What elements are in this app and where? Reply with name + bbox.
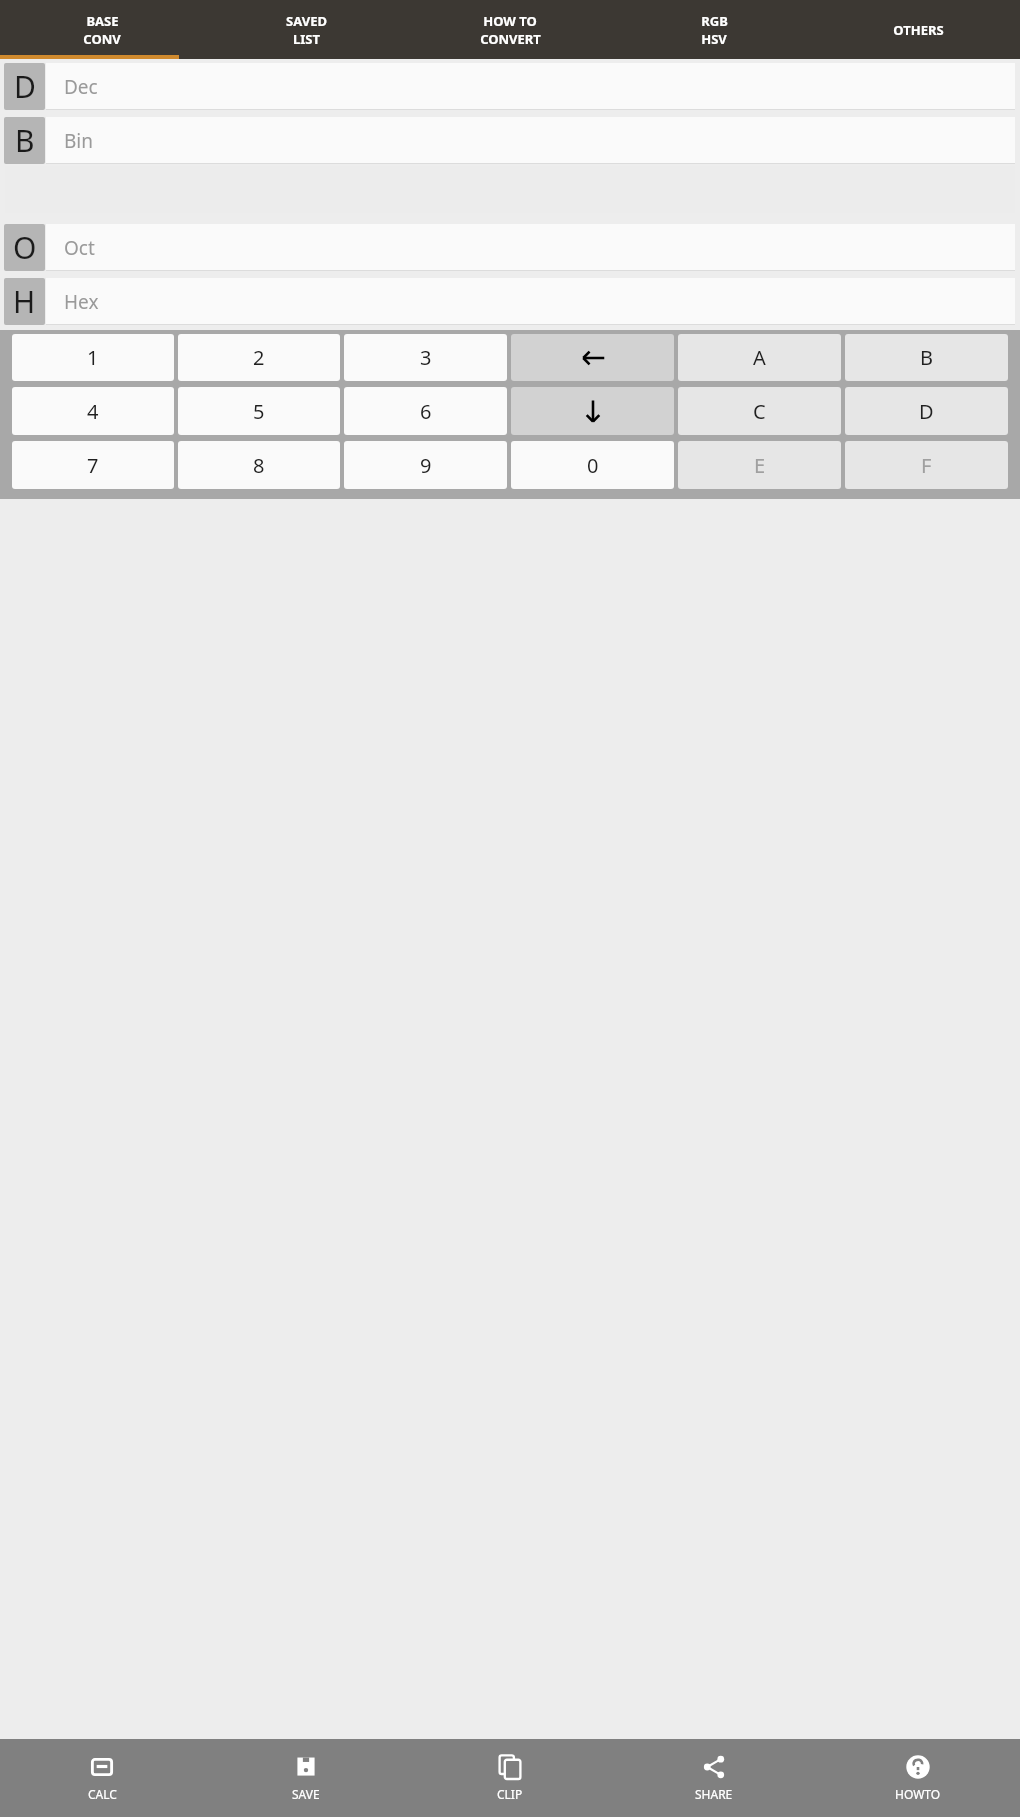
other: Hide keypad: [578, 396, 608, 426]
button[interactable]: SAVED: [204, 0, 408, 59]
button[interactable]: D: [845, 387, 1008, 435]
staticText: SAVED: [286, 12, 327, 30]
button[interactable]: 4: [12, 387, 174, 435]
staticText: HOW TO: [483, 12, 537, 30]
staticText: 4: [87, 398, 99, 425]
staticText: 7: [87, 452, 99, 479]
button[interactable]: 5: [178, 387, 340, 435]
staticText: CALC: [88, 1786, 117, 1802]
staticText: Bin: [64, 128, 93, 154]
button[interactable]: HOWTO: [816, 1739, 1020, 1817]
staticText: 1: [87, 344, 99, 371]
staticText: 2: [253, 344, 265, 371]
staticText: H: [13, 281, 36, 322]
button[interactable]: BASE: [0, 0, 204, 59]
button[interactable]: SHARE: [612, 1739, 816, 1817]
button[interactable]: 3: [344, 334, 507, 381]
staticText: HOWTO: [895, 1786, 941, 1802]
button[interactable]: SAVE: [204, 1739, 408, 1817]
button[interactable]: F: [845, 441, 1008, 489]
staticText: OTHERS: [893, 21, 944, 39]
staticText: CLIP: [497, 1786, 523, 1802]
staticText: HSV: [701, 30, 727, 48]
button[interactable]: 1: [12, 334, 174, 381]
button[interactable]: 8: [178, 441, 340, 489]
staticText: A: [753, 344, 766, 371]
staticText: CONVERT: [480, 30, 541, 48]
button[interactable]: B: [4, 117, 1015, 164]
staticText: F: [921, 452, 932, 479]
staticText: SHARE: [695, 1786, 733, 1802]
staticText: SAVE: [292, 1786, 320, 1802]
button[interactable]: RGB: [612, 0, 816, 59]
staticText: BASE: [86, 12, 119, 30]
staticText: Hex: [64, 289, 99, 315]
button[interactable]: D: [4, 63, 1015, 110]
staticText: B: [920, 344, 933, 371]
button[interactable]: 6: [344, 387, 507, 435]
button[interactable]: CLIP: [408, 1739, 612, 1817]
staticText: LIST: [293, 30, 320, 48]
staticText: 6: [420, 398, 432, 425]
staticText: 9: [420, 452, 432, 479]
staticText: 5: [253, 398, 265, 425]
button[interactable]: 7: [12, 441, 174, 489]
staticText: C: [753, 398, 766, 425]
staticText: O: [13, 227, 37, 268]
staticText: Oct: [64, 235, 95, 261]
staticText: 3: [420, 344, 432, 371]
button[interactable]: A: [678, 334, 841, 381]
button[interactable]: C: [678, 387, 841, 435]
button[interactable]: B: [845, 334, 1008, 381]
button[interactable]: 9: [344, 441, 507, 489]
staticText: E: [754, 452, 766, 479]
button[interactable]: 0: [511, 441, 674, 489]
staticText: D: [14, 66, 36, 107]
button[interactable]: Backspace: [511, 334, 674, 381]
staticText: B: [15, 120, 35, 161]
staticText: 0: [587, 452, 599, 479]
button[interactable]: OTHERS: [816, 0, 1020, 59]
button[interactable]: O: [4, 224, 1015, 271]
button[interactable]: CALC: [0, 1739, 204, 1817]
button[interactable]: HOW TO: [408, 0, 612, 59]
button[interactable]: 2: [178, 334, 340, 381]
staticText: CONV: [83, 30, 121, 48]
staticText: 8: [253, 452, 265, 479]
button[interactable]: H: [4, 278, 1015, 325]
staticText: RGB: [701, 12, 728, 30]
other: Backspace: [578, 343, 608, 373]
staticText: Dec: [64, 74, 98, 100]
staticText: D: [919, 398, 934, 425]
button[interactable]: Hide keypad: [511, 387, 674, 435]
button[interactable]: E: [678, 441, 841, 489]
